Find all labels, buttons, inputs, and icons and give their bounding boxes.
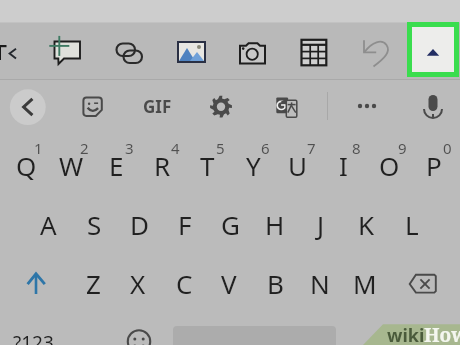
staticText: H	[265, 207, 285, 242]
staticText: X	[130, 266, 146, 301]
staticText: Q	[16, 148, 37, 183]
staticText: 7	[307, 138, 316, 158]
staticText: D	[130, 207, 149, 242]
staticText: ?123	[13, 330, 54, 345]
button[interactable]: M	[343, 257, 387, 309]
staticText: U	[288, 148, 308, 183]
button[interactable]: Collapse toolbar	[412, 27, 454, 72]
button[interactable]: W	[49, 139, 93, 191]
staticText: 9	[398, 138, 407, 158]
button[interactable]: D	[117, 198, 161, 250]
staticText: 5	[216, 138, 225, 158]
staticText: I	[339, 148, 348, 183]
button[interactable]: S	[72, 198, 116, 250]
button[interactable]: J	[299, 198, 343, 250]
staticText: B	[267, 266, 284, 301]
staticText: 0	[443, 138, 452, 158]
button[interactable]: O	[367, 139, 411, 191]
staticText: M	[353, 266, 377, 301]
button[interactable]: E	[94, 139, 138, 191]
staticText: J	[317, 207, 325, 242]
staticText: L	[405, 207, 419, 242]
button[interactable]: B	[253, 257, 297, 309]
staticText: A	[40, 207, 57, 242]
button[interactable]: T	[185, 139, 229, 191]
staticText: C	[176, 266, 193, 301]
staticText: K	[358, 207, 375, 242]
staticText: Y	[246, 148, 261, 183]
button[interactable]: Z	[71, 257, 115, 309]
staticText: 1	[34, 138, 43, 158]
button[interactable]: GIF	[135, 86, 179, 126]
button[interactable]: P	[412, 139, 456, 191]
staticText: T	[200, 148, 215, 183]
staticText: V	[221, 266, 237, 301]
button[interactable]: F	[163, 198, 207, 250]
staticText: 8	[352, 138, 361, 158]
button[interactable]: ?123	[8, 325, 58, 345]
button[interactable]: R	[140, 139, 184, 191]
button[interactable]: I	[321, 139, 365, 191]
staticText: 3	[125, 138, 134, 158]
staticText: P	[426, 148, 442, 183]
button[interactable]: U	[276, 139, 320, 191]
button[interactable]: X	[116, 257, 160, 309]
button[interactable]: K	[344, 198, 388, 250]
staticText: 6	[261, 138, 270, 158]
staticText: G	[221, 207, 240, 242]
staticText: R	[154, 148, 171, 183]
button[interactable]: H	[253, 198, 297, 250]
staticText: wiki	[387, 323, 425, 345]
staticText: GIF	[143, 95, 172, 118]
staticText: 4	[171, 138, 180, 158]
button[interactable]: G	[208, 198, 252, 250]
button[interactable]: V	[207, 257, 251, 309]
button[interactable]: Q	[4, 139, 48, 191]
button[interactable]: A	[26, 198, 70, 250]
button[interactable]: Y	[231, 139, 275, 191]
staticText: How	[424, 322, 460, 345]
staticText: F	[178, 207, 192, 242]
staticText: 2	[80, 138, 89, 158]
button[interactable]: L	[390, 198, 434, 250]
staticText: E	[109, 148, 124, 183]
button[interactable]: N	[298, 257, 342, 309]
button[interactable]: C	[162, 257, 206, 309]
staticText: Z	[86, 266, 101, 301]
staticText: N	[310, 266, 330, 301]
staticText: S	[87, 207, 102, 242]
staticText: O	[379, 148, 400, 183]
staticText: W	[59, 148, 84, 183]
